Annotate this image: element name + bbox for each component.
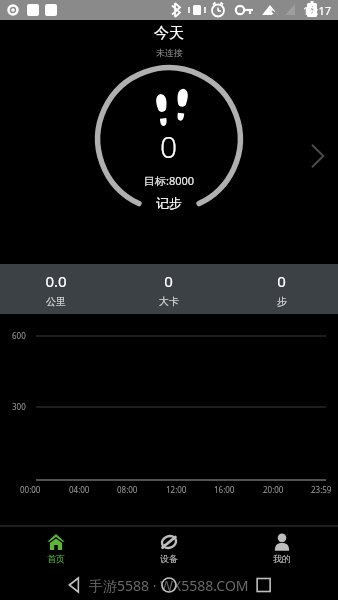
staticText: 600 bbox=[12, 330, 26, 341]
staticText: 23:59 bbox=[311, 484, 332, 495]
staticText: 目标:8000 bbox=[144, 173, 195, 188]
staticText: 20:00 bbox=[263, 484, 284, 495]
staticText: 16:00 bbox=[214, 484, 235, 495]
button[interactable]: 我的 bbox=[225, 526, 338, 570]
staticText: 记步 bbox=[156, 195, 182, 211]
button[interactable]: 首页 bbox=[0, 526, 112, 570]
staticText: 0 bbox=[277, 271, 286, 291]
staticText: 0 bbox=[164, 271, 173, 291]
staticText: 04:00 bbox=[69, 484, 90, 495]
staticText: 12:00 bbox=[166, 484, 187, 495]
staticText: 首页 bbox=[47, 553, 65, 564]
staticText: 手游5588 · WX5588.COM bbox=[89, 576, 249, 595]
staticText: 设备 bbox=[160, 553, 178, 564]
staticText: 300 bbox=[12, 401, 26, 412]
staticText: 步 bbox=[277, 295, 287, 308]
staticText: 未连接 bbox=[156, 47, 183, 58]
button[interactable]: 0 bbox=[94, 64, 244, 214]
staticText: 今天 bbox=[154, 24, 184, 43]
button[interactable]: 0 bbox=[225, 264, 338, 314]
button[interactable]: 设备 bbox=[112, 526, 225, 570]
staticText: 18:17 bbox=[303, 3, 332, 18]
button[interactable]: 0 bbox=[112, 264, 225, 314]
staticText: 我的 bbox=[273, 553, 291, 564]
button[interactable]: 0.0 bbox=[0, 264, 112, 314]
staticText: 0 bbox=[160, 126, 178, 167]
staticText: 08:00 bbox=[117, 484, 138, 495]
staticText: 公里 bbox=[46, 295, 66, 308]
staticText: 00:00 bbox=[20, 484, 41, 495]
button[interactable]: Next day bbox=[306, 136, 330, 176]
staticText: 大卡 bbox=[159, 295, 179, 308]
staticText: 0.0 bbox=[45, 271, 67, 291]
